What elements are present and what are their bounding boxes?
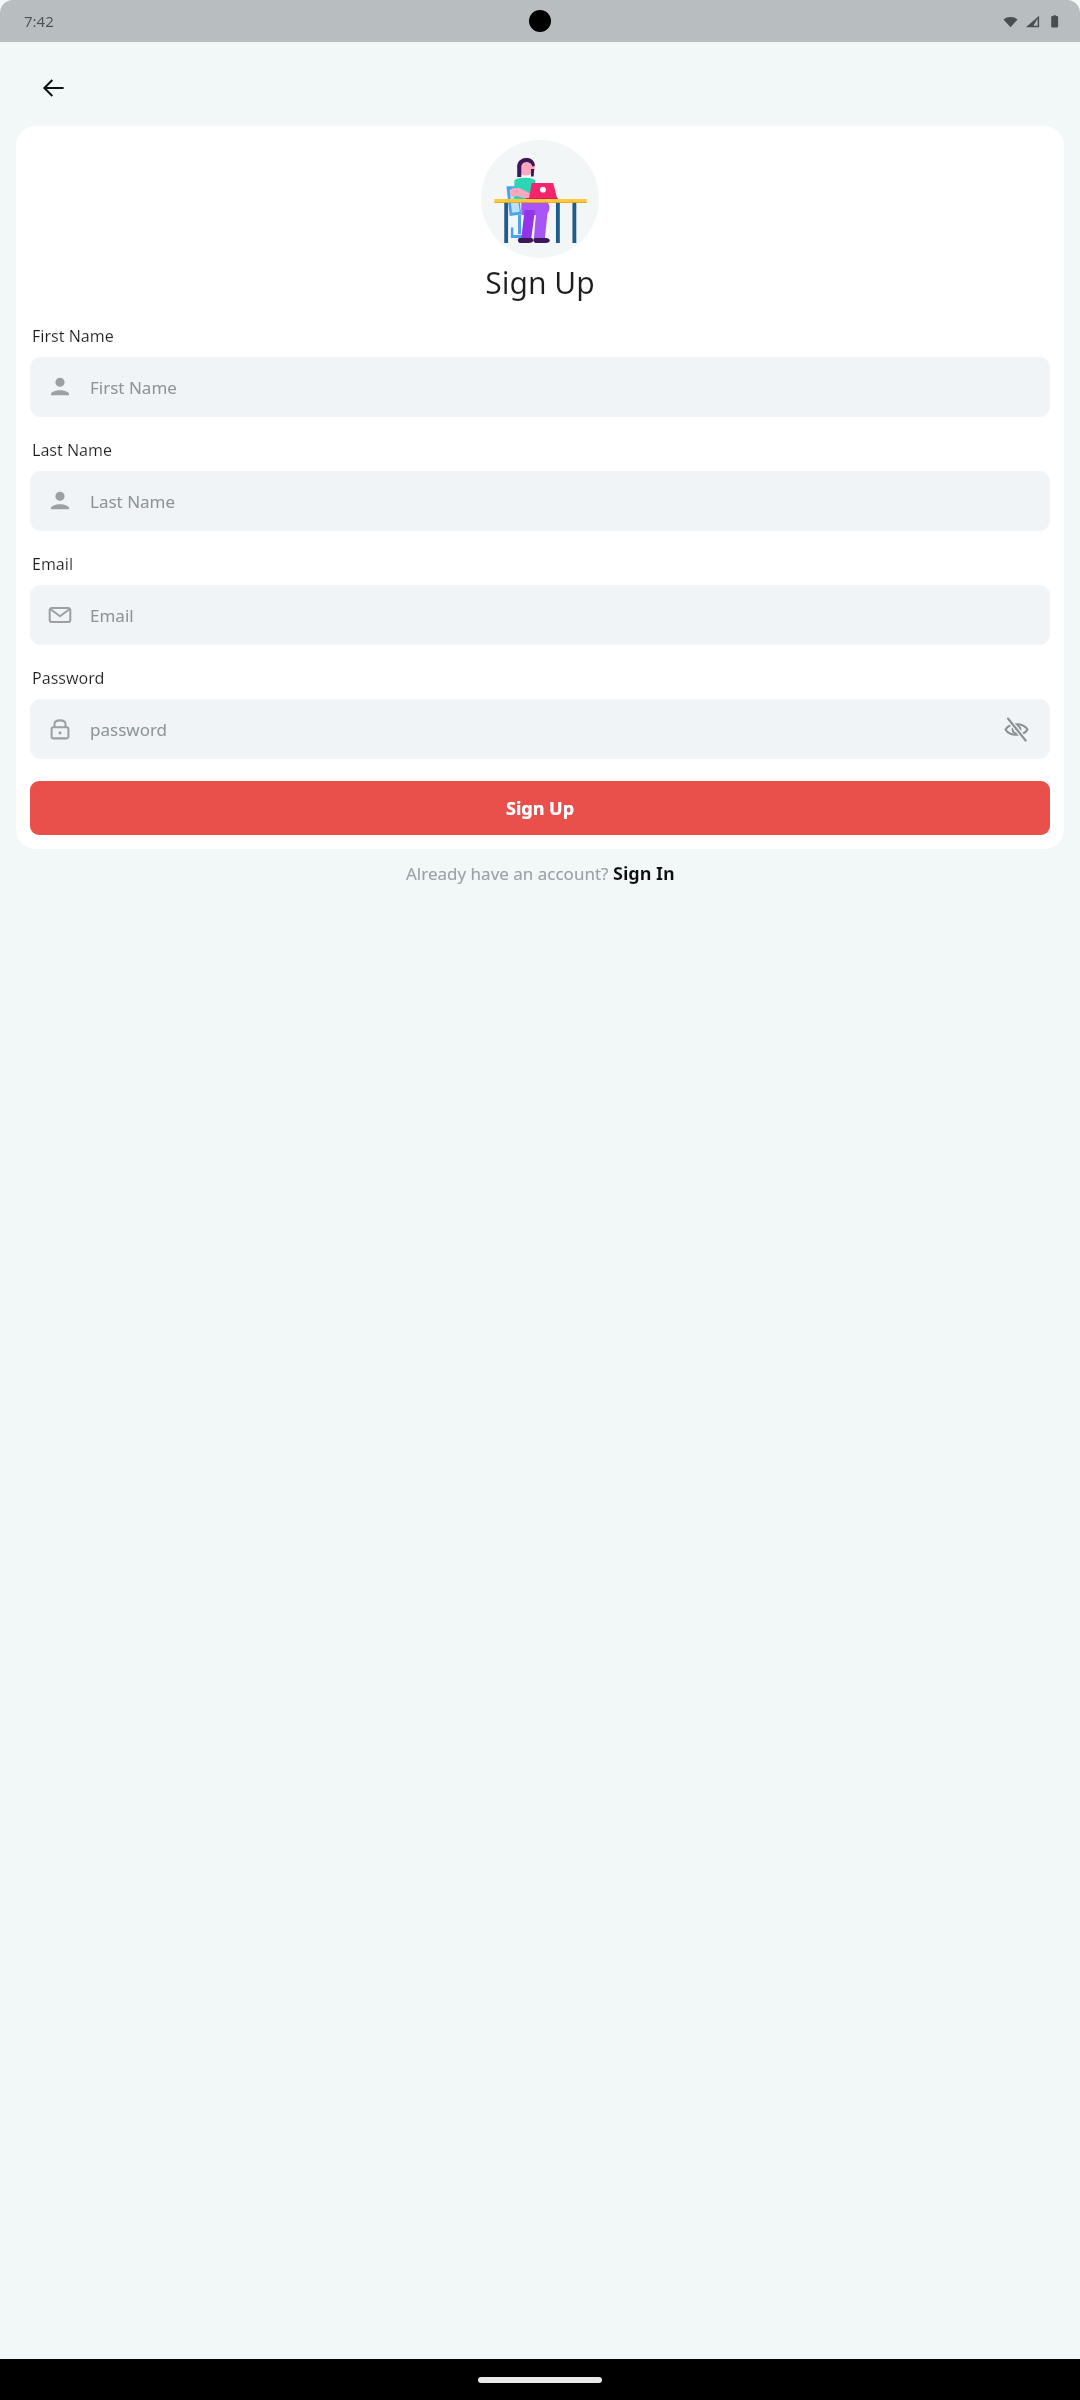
staticText: First Name	[90, 376, 177, 399]
button[interactable]: Back	[30, 64, 78, 112]
staticText: Sign Up	[30, 262, 1050, 303]
button[interactable]: Email	[30, 585, 1050, 645]
staticText: Password	[32, 667, 105, 689]
staticText: Last Name	[90, 490, 176, 513]
button[interactable]: Already have an account?	[0, 861, 1080, 886]
button[interactable]: Show password	[1000, 713, 1032, 745]
staticText: Already have an account?	[406, 862, 613, 885]
staticText: Last Name	[32, 439, 113, 461]
button[interactable]: First Name	[30, 357, 1050, 417]
button[interactable]: Sign Up	[30, 781, 1050, 835]
button[interactable]: password	[30, 699, 1050, 759]
staticText: Email	[90, 604, 134, 627]
staticText: First Name	[32, 325, 114, 347]
staticText: Sign Up	[506, 796, 575, 821]
staticText: 7:42	[24, 11, 54, 31]
staticText: Email	[32, 553, 74, 575]
staticText: Sign In	[613, 861, 675, 886]
staticText: password	[90, 718, 168, 741]
button[interactable]: Last Name	[30, 471, 1050, 531]
